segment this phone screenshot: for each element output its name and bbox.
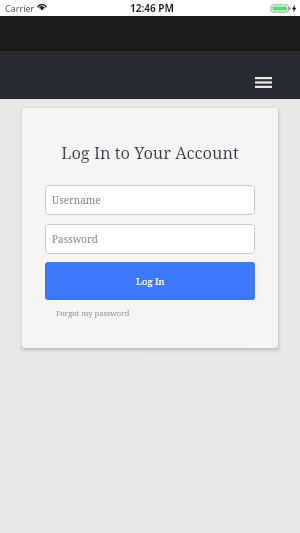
staticText: 12:46 PM — [130, 1, 174, 15]
button[interactable]: Log In — [45, 262, 255, 300]
staticText: Username — [52, 193, 101, 207]
staticText: Log In to Your Account — [45, 141, 255, 163]
button[interactable]: Forgot my password — [56, 305, 130, 321]
staticText: Carrier — [5, 2, 35, 14]
staticText: Log In — [136, 275, 165, 288]
button[interactable]: Password — [45, 224, 255, 254]
button[interactable]: Menu — [250, 71, 276, 93]
staticText: Password — [52, 232, 98, 246]
button[interactable]: Username — [45, 185, 255, 215]
staticText: Forgot my password — [56, 308, 130, 318]
